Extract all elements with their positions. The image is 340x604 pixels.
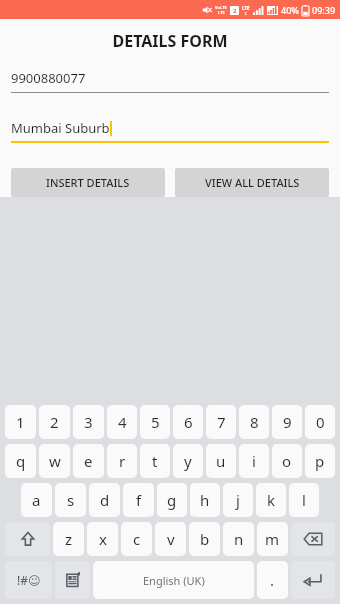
staticText: VoLTE xyxy=(215,5,227,10)
button[interactable]: f xyxy=(123,483,154,517)
staticText: c xyxy=(133,529,141,549)
staticText: h xyxy=(200,490,210,510)
staticText: m xyxy=(265,529,280,549)
button[interactable]: 2 xyxy=(39,405,70,439)
button[interactable]: 8 xyxy=(239,405,269,439)
button[interactable]: 9 xyxy=(272,405,302,439)
button[interactable]: 6 xyxy=(173,405,203,439)
button[interactable]: w xyxy=(39,444,70,478)
button[interactable]: !#☺ xyxy=(5,561,52,599)
button[interactable]: b xyxy=(189,522,220,556)
button[interactable]: q xyxy=(5,444,36,478)
button[interactable]: o xyxy=(272,444,302,478)
staticText: f xyxy=(136,490,142,510)
button[interactable]: r xyxy=(107,444,137,478)
staticText: 5 xyxy=(151,412,160,432)
button[interactable]: Keyboard settings xyxy=(55,561,90,599)
button[interactable]: . xyxy=(257,561,288,599)
button[interactable]: t xyxy=(140,444,170,478)
button[interactable]: k xyxy=(256,483,286,517)
button[interactable]: d xyxy=(89,483,120,517)
button[interactable]: v xyxy=(155,522,186,556)
button[interactable]: 5 xyxy=(140,405,170,439)
staticText: !#☺ xyxy=(17,572,41,588)
button[interactable]: e xyxy=(73,444,104,478)
staticText: i xyxy=(252,451,256,471)
button[interactable]: l xyxy=(289,483,319,517)
staticText: o xyxy=(282,451,292,471)
button[interactable]: x xyxy=(87,522,118,556)
button[interactable]: a xyxy=(21,483,52,517)
staticText: VIEW ALL DETAILS xyxy=(205,175,300,190)
staticText: g xyxy=(167,490,177,510)
button[interactable]: 9900880077 xyxy=(11,69,329,93)
staticText: 4 xyxy=(118,412,127,432)
button[interactable]: INSERT DETAILS xyxy=(11,168,165,197)
staticText: 9 xyxy=(283,412,292,432)
staticText: 6 xyxy=(184,412,193,432)
staticText: 9900880077 xyxy=(11,69,86,87)
staticText: b xyxy=(200,529,210,549)
staticText: 2 xyxy=(50,412,59,432)
staticText: 2 xyxy=(233,7,237,15)
staticText: 3 xyxy=(84,412,93,432)
button[interactable]: j xyxy=(223,483,253,517)
staticText: x xyxy=(99,529,107,549)
button[interactable]: u xyxy=(206,444,236,478)
button[interactable]: English (UK) xyxy=(93,561,254,599)
staticText: 7 xyxy=(217,412,226,432)
button[interactable]: z xyxy=(53,522,84,556)
staticText: z xyxy=(65,529,73,549)
button[interactable]: c xyxy=(121,522,152,556)
staticText: u xyxy=(216,451,226,471)
staticText: n xyxy=(234,529,244,549)
button[interactable]: g xyxy=(157,483,187,517)
staticText: q xyxy=(16,451,26,471)
staticText: e xyxy=(84,451,93,471)
staticText: DETAILS FORM xyxy=(0,30,340,52)
button[interactable]: Shift xyxy=(5,522,50,556)
staticText: s xyxy=(67,490,75,510)
staticText: LTE xyxy=(218,10,225,15)
button[interactable]: h xyxy=(190,483,220,517)
button[interactable]: Mumbai Suburb xyxy=(11,119,329,143)
staticText: 1 xyxy=(16,412,25,432)
staticText: y xyxy=(184,451,192,471)
staticText: 8 xyxy=(250,412,259,432)
button[interactable]: 3 xyxy=(73,405,104,439)
staticText: LTE xyxy=(242,5,250,11)
staticText: w xyxy=(49,451,61,471)
staticText: v xyxy=(167,529,175,549)
button[interactable]: 7 xyxy=(206,405,236,439)
button[interactable]: m xyxy=(257,522,288,556)
button[interactable]: y xyxy=(173,444,203,478)
staticText: p xyxy=(315,451,325,471)
staticText: 40% xyxy=(281,4,299,16)
button[interactable]: 4 xyxy=(107,405,137,439)
staticText: l xyxy=(302,490,306,510)
button[interactable]: Enter xyxy=(291,561,335,599)
staticText: d xyxy=(100,490,110,510)
staticText: . xyxy=(270,570,275,590)
staticText: t xyxy=(152,451,158,471)
staticText: INSERT DETAILS xyxy=(46,175,130,190)
button[interactable]: 1 xyxy=(5,405,36,439)
staticText: English (UK) xyxy=(143,573,205,588)
button[interactable]: s xyxy=(55,483,86,517)
staticText: r xyxy=(119,451,126,471)
button[interactable]: 0 xyxy=(305,405,335,439)
staticText: 09:39 xyxy=(312,4,336,16)
staticText: ↕ xyxy=(244,11,248,16)
button[interactable]: n xyxy=(223,522,254,556)
button[interactable]: VIEW ALL DETAILS xyxy=(175,168,329,197)
staticText: Mumbai Suburb xyxy=(11,119,110,137)
staticText: a xyxy=(32,490,41,510)
staticText: k xyxy=(267,490,276,510)
button[interactable]: i xyxy=(239,444,269,478)
button[interactable]: p xyxy=(305,444,335,478)
button[interactable]: Backspace xyxy=(291,522,335,556)
staticText: j xyxy=(236,490,240,510)
staticText: 0 xyxy=(316,412,325,432)
